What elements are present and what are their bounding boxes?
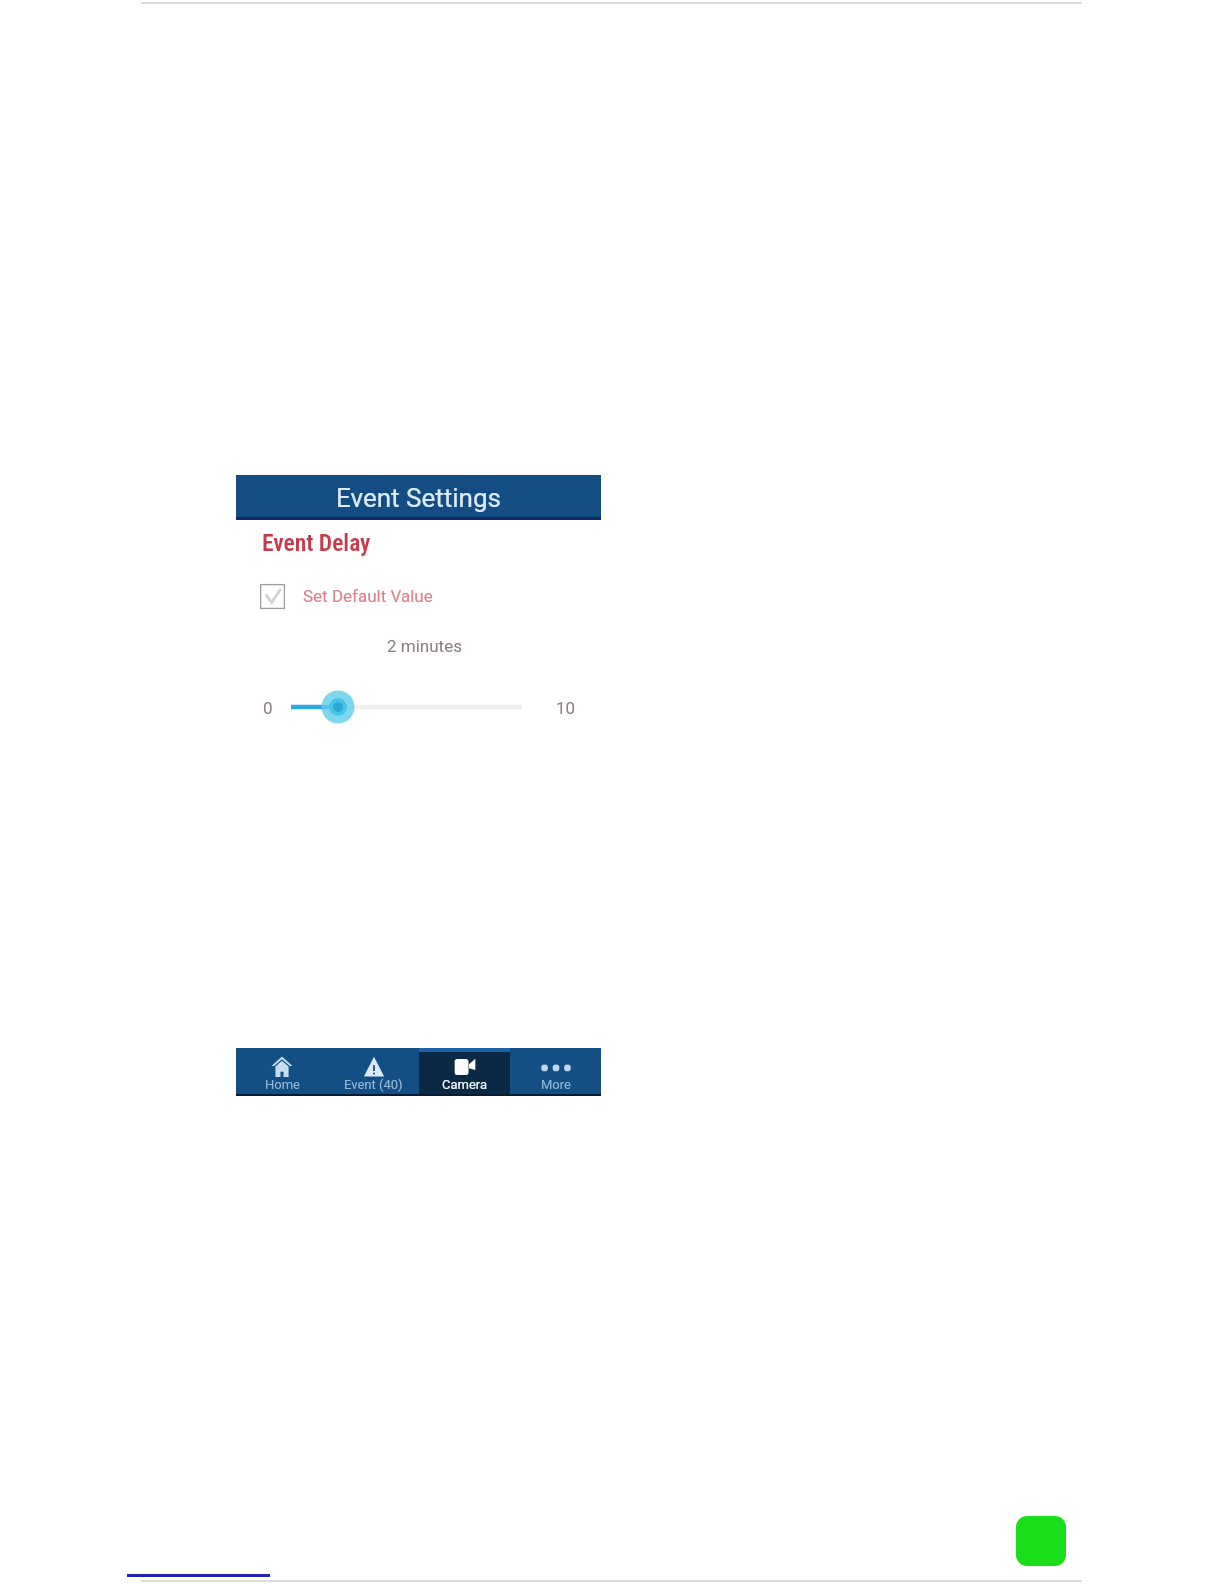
other: Events [363,1056,385,1078]
button[interactable]: Event delay slider [236,687,601,727]
staticText: Event Settings [336,483,501,513]
staticText: Home [265,1077,300,1092]
staticText: Event (40) [344,1077,403,1092]
staticText: Event Delay [262,529,371,557]
staticText: Set Default Value [303,586,433,606]
staticText: Camera [442,1077,488,1092]
button[interactable]: Green badge [1016,1516,1066,1566]
other: Home [271,1056,293,1078]
staticText: 2 minutes [242,636,607,656]
button[interactable]: Events [328,1048,419,1096]
staticText: More [541,1077,571,1092]
staticText: 10 [556,698,576,718]
button[interactable]: More [510,1048,601,1096]
button[interactable]: Home [236,1048,328,1096]
button[interactable]: Set Default Value [260,579,460,613]
staticText: 0 [263,698,273,718]
button[interactable]: Camera [419,1048,510,1096]
other: More [545,1056,567,1078]
other: Camera [454,1056,476,1078]
